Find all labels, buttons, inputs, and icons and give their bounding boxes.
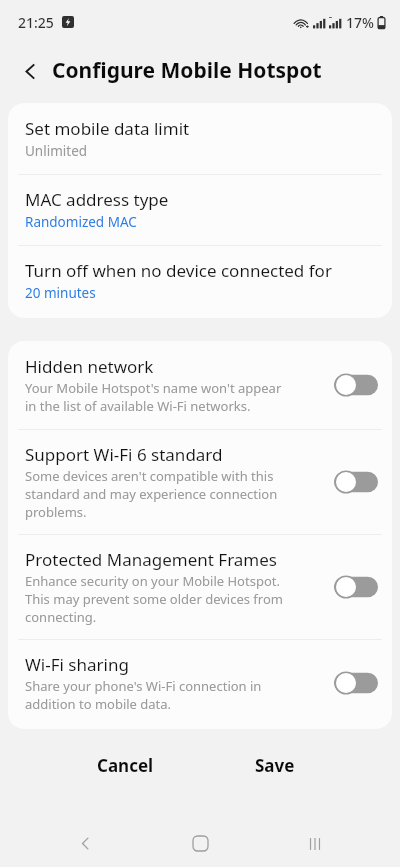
staticText: Protected Management Frames — [25, 548, 277, 571]
staticText: Wi-Fi sharing — [25, 653, 129, 676]
staticText: Some devices aren't compatible with this… — [25, 467, 278, 521]
button[interactable]: Back — [14, 55, 46, 87]
staticText: Your Mobile Hotspot's name won't appear … — [25, 379, 282, 415]
staticText: 21:25 — [18, 13, 54, 32]
staticText: 20 minutes — [25, 284, 96, 302]
staticText: MAC address type — [25, 188, 169, 211]
staticText: Unlimited — [25, 142, 88, 160]
button[interactable]: Home — [170, 820, 230, 867]
button[interactable]: Back — [55, 820, 115, 867]
staticText: Hidden network — [25, 355, 154, 378]
button[interactable]: Toggle — [334, 373, 378, 397]
button[interactable]: Set mobile data limit — [8, 103, 392, 174]
button[interactable]: Save — [200, 754, 350, 777]
staticText: Randomized MAC — [25, 213, 137, 231]
staticText: Set mobile data limit — [25, 117, 190, 140]
staticText: 17% — [346, 13, 374, 32]
staticText: Cancel — [97, 754, 154, 777]
staticText: Turn off when no device connected for — [25, 259, 332, 282]
button[interactable]: Turn off when no device connected for — [8, 246, 392, 318]
button[interactable]: Toggle — [334, 470, 378, 494]
button[interactable]: Wi-Fi sharing — [8, 640, 392, 729]
staticText: Share your phone's Wi-Fi connection in a… — [25, 677, 262, 713]
button[interactable]: Toggle — [334, 575, 378, 599]
button[interactable]: MAC address type — [8, 175, 392, 245]
button[interactable]: Protected Management Frames — [8, 535, 392, 639]
button[interactable]: Support Wi-Fi 6 standard — [8, 430, 392, 534]
staticText: Save — [255, 754, 295, 777]
button[interactable]: Toggle — [334, 671, 378, 695]
button[interactable]: Hidden network — [8, 341, 392, 429]
button[interactable]: Cancel — [50, 754, 200, 777]
staticText: Enhance security on your Mobile Hotspot.… — [25, 572, 283, 626]
staticText: Configure Mobile Hotspot — [52, 56, 322, 85]
button[interactable]: Recents — [285, 820, 345, 867]
staticText: Support Wi-Fi 6 standard — [25, 443, 223, 466]
